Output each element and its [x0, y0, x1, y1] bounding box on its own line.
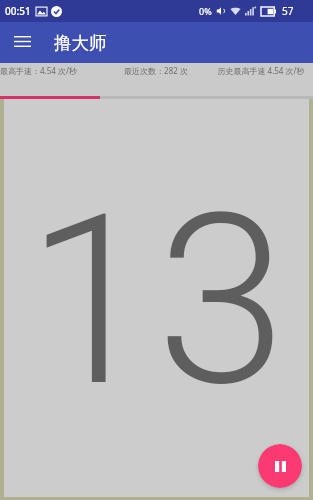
button[interactable]: Menu: [0, 22, 44, 63]
staticText: 撸大师: [54, 32, 107, 54]
staticText: 57: [282, 4, 294, 18]
staticText: 最高手速：4.54 次/秒: [0, 65, 77, 76]
button[interactable]: 最近次数：282 次: [105, 63, 209, 99]
staticText: 最近次数：282 次: [124, 65, 188, 76]
button[interactable]: 历史最高手速 4.54 次/秒: [209, 63, 313, 99]
staticText: 0%: [199, 5, 212, 17]
button[interactable]: Pause: [258, 444, 302, 488]
staticText: 00:51: [5, 4, 31, 18]
staticText: 13: [26, 164, 287, 439]
staticText: 历史最高手速 4.54 次/秒: [217, 65, 305, 76]
button[interactable]: 最高手速：4.54 次/秒: [0, 63, 105, 99]
